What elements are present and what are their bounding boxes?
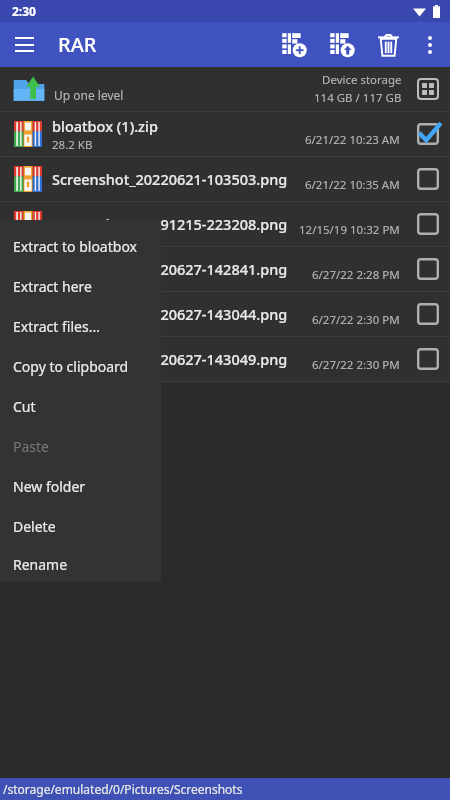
button[interactable]: Rename	[0, 546, 161, 582]
staticText: Cut	[13, 397, 36, 416]
button[interactable]: Copy to clipboard	[0, 346, 161, 386]
staticText: /storage/emulated/0/Pictures/Screenshots	[3, 781, 243, 797]
staticText: Rename	[13, 555, 68, 574]
staticText: Delete	[13, 517, 56, 536]
button[interactable]: Screenshot_20220621-103503.png	[0, 157, 450, 201]
button[interactable]: More options	[410, 25, 450, 65]
staticText: Extract files...	[13, 317, 100, 336]
button[interactable]: Storage view	[412, 73, 444, 105]
button[interactable]: Screenshot_20220627-142841.png	[0, 247, 450, 291]
button[interactable]: Selected	[410, 116, 446, 152]
staticText: Device storage	[322, 72, 402, 88]
button[interactable]: Up one level	[0, 67, 450, 111]
staticText: 114 GB / 117 GB	[314, 90, 402, 106]
button[interactable]: Extract to bloatbox (1)/	[0, 226, 161, 266]
staticText: bloatbox (1).zip	[52, 116, 158, 136]
staticText: 6/27/22 2:28 PM	[312, 267, 400, 283]
staticText: Paste	[13, 437, 49, 456]
staticText: Screenshot_20220627-142841.png	[52, 259, 288, 279]
staticText: New folder	[13, 477, 86, 496]
staticText: Extract here	[13, 277, 92, 296]
staticText: 6/27/22 2:30 PM	[312, 312, 400, 328]
staticText: 6/27/22 2:30 PM	[312, 357, 400, 373]
button[interactable]: Add to archive	[270, 22, 318, 67]
button[interactable]: Not selected	[410, 341, 446, 377]
button[interactable]: Extract files...	[0, 306, 161, 346]
staticText: Screenshot_20220627-143049.png	[52, 349, 288, 369]
button[interactable]: Cut	[0, 386, 161, 426]
button[interactable]: bloatbox (1).zip	[0, 112, 450, 156]
button[interactable]: Extract here	[0, 266, 161, 306]
staticText: RAR	[58, 31, 97, 58]
staticText: 12/15/19 10:32 PM	[299, 222, 400, 238]
staticText: 2:30	[12, 3, 36, 19]
button[interactable]: Not selected	[410, 251, 446, 287]
button: Paste	[0, 426, 161, 466]
button[interactable]: Screenshot_20220627-143044.png	[0, 292, 450, 336]
button[interactable]: Open navigation drawer	[0, 22, 48, 67]
staticText: 28.2 KB	[52, 137, 93, 153]
staticText: Screenshot_20220627-143044.png	[52, 304, 288, 324]
button[interactable]: Not selected	[410, 161, 446, 197]
staticText: 6/21/22 10:23 AM	[305, 132, 400, 148]
button[interactable]: New folder	[0, 466, 161, 506]
staticText: 6/21/22 10:35 AM	[305, 177, 400, 193]
staticText: Screenshot_20220621-103503.png	[52, 169, 288, 189]
staticText: Up one level	[54, 87, 124, 103]
button[interactable]: Not selected	[410, 296, 446, 332]
button[interactable]: Delete	[366, 23, 410, 67]
button[interactable]: Delete	[0, 506, 161, 546]
button[interactable]: /storage/emulated/0/Pictures/Screenshots	[0, 778, 450, 800]
button[interactable]: Extract archive	[318, 22, 366, 67]
staticText: Copy to clipboard	[13, 357, 129, 376]
staticText: Extract to bloatbox (1)/	[13, 237, 161, 256]
button[interactable]: Screenshot_20220627-143049.png	[0, 337, 450, 381]
staticText: Screenshot_20191215-223208.png	[52, 214, 288, 234]
button[interactable]: Screenshot_20191215-223208.png	[0, 202, 450, 246]
button[interactable]: Not selected	[410, 206, 446, 242]
